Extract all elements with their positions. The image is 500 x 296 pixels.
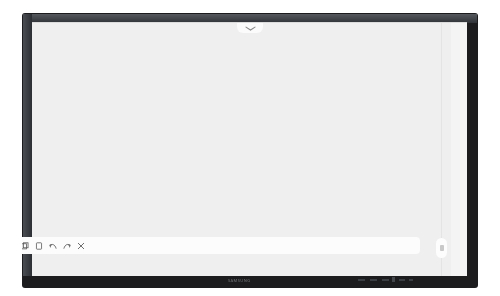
button[interactable]: Close xyxy=(76,237,85,254)
button[interactable]: Redo xyxy=(62,237,71,254)
button[interactable]: Capture xyxy=(22,237,29,254)
staticText: SAMSUNG xyxy=(228,278,251,283)
button[interactable]: Frame xyxy=(34,237,43,254)
button[interactable]: Open quick panel xyxy=(237,23,263,33)
button[interactable]: Side panel handle xyxy=(436,238,447,258)
button[interactable]: Undo xyxy=(48,237,57,254)
